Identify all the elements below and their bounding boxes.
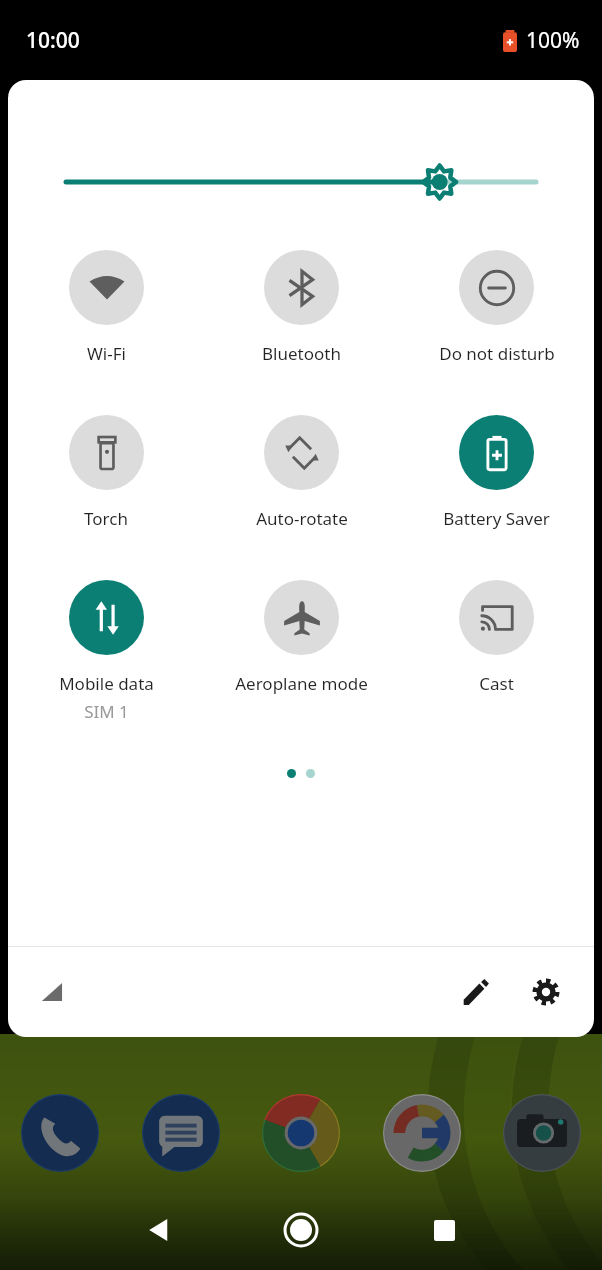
staticText: 100% — [526, 26, 580, 55]
button[interactable]: Auto-rotate — [204, 411, 399, 534]
staticText: Torch — [84, 507, 128, 530]
button[interactable]: Messages — [141, 1093, 221, 1173]
staticText: Wi-Fi — [87, 342, 126, 365]
button[interactable]: Signal — [32, 972, 72, 1012]
button[interactable]: Chrome — [261, 1093, 341, 1173]
button[interactable]: Aeroplane mode — [204, 576, 399, 699]
staticText: Do not disturb — [439, 342, 555, 365]
staticText: Bluetooth — [262, 342, 341, 365]
staticText: Mobile data — [59, 672, 154, 695]
button[interactable]: Wi-Fi — [8, 246, 204, 369]
button[interactable]: Bluetooth — [204, 246, 399, 369]
staticText: 10:00 — [26, 26, 80, 55]
button[interactable]: Brightness — [8, 162, 594, 202]
button[interactable]: Do not disturb — [399, 246, 594, 369]
button[interactable]: Cast — [399, 576, 594, 699]
button[interactable]: Battery Saver — [399, 411, 594, 534]
button[interactable]: Google — [382, 1093, 462, 1173]
button[interactable]: Camera — [502, 1093, 582, 1173]
button[interactable]: Back — [135, 1207, 181, 1253]
staticText: Cast — [479, 672, 514, 695]
button[interactable]: Home — [278, 1207, 324, 1253]
button[interactable]: Torch — [8, 411, 204, 534]
button[interactable]: Mobile data — [8, 576, 204, 727]
button[interactable]: Edit — [454, 970, 498, 1014]
staticText: Aeroplane mode — [235, 672, 368, 695]
button[interactable]: Settings — [524, 970, 568, 1014]
staticText: Auto-rotate — [256, 507, 348, 530]
button[interactable]: Phone — [20, 1093, 100, 1173]
staticText: SIM 1 — [84, 700, 129, 723]
button[interactable]: Recents — [421, 1207, 467, 1253]
staticText: Battery Saver — [443, 507, 550, 530]
